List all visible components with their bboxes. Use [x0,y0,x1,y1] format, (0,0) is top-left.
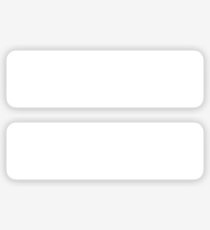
button[interactable]: First card [6,50,204,108]
button[interactable]: Second card [6,122,204,180]
